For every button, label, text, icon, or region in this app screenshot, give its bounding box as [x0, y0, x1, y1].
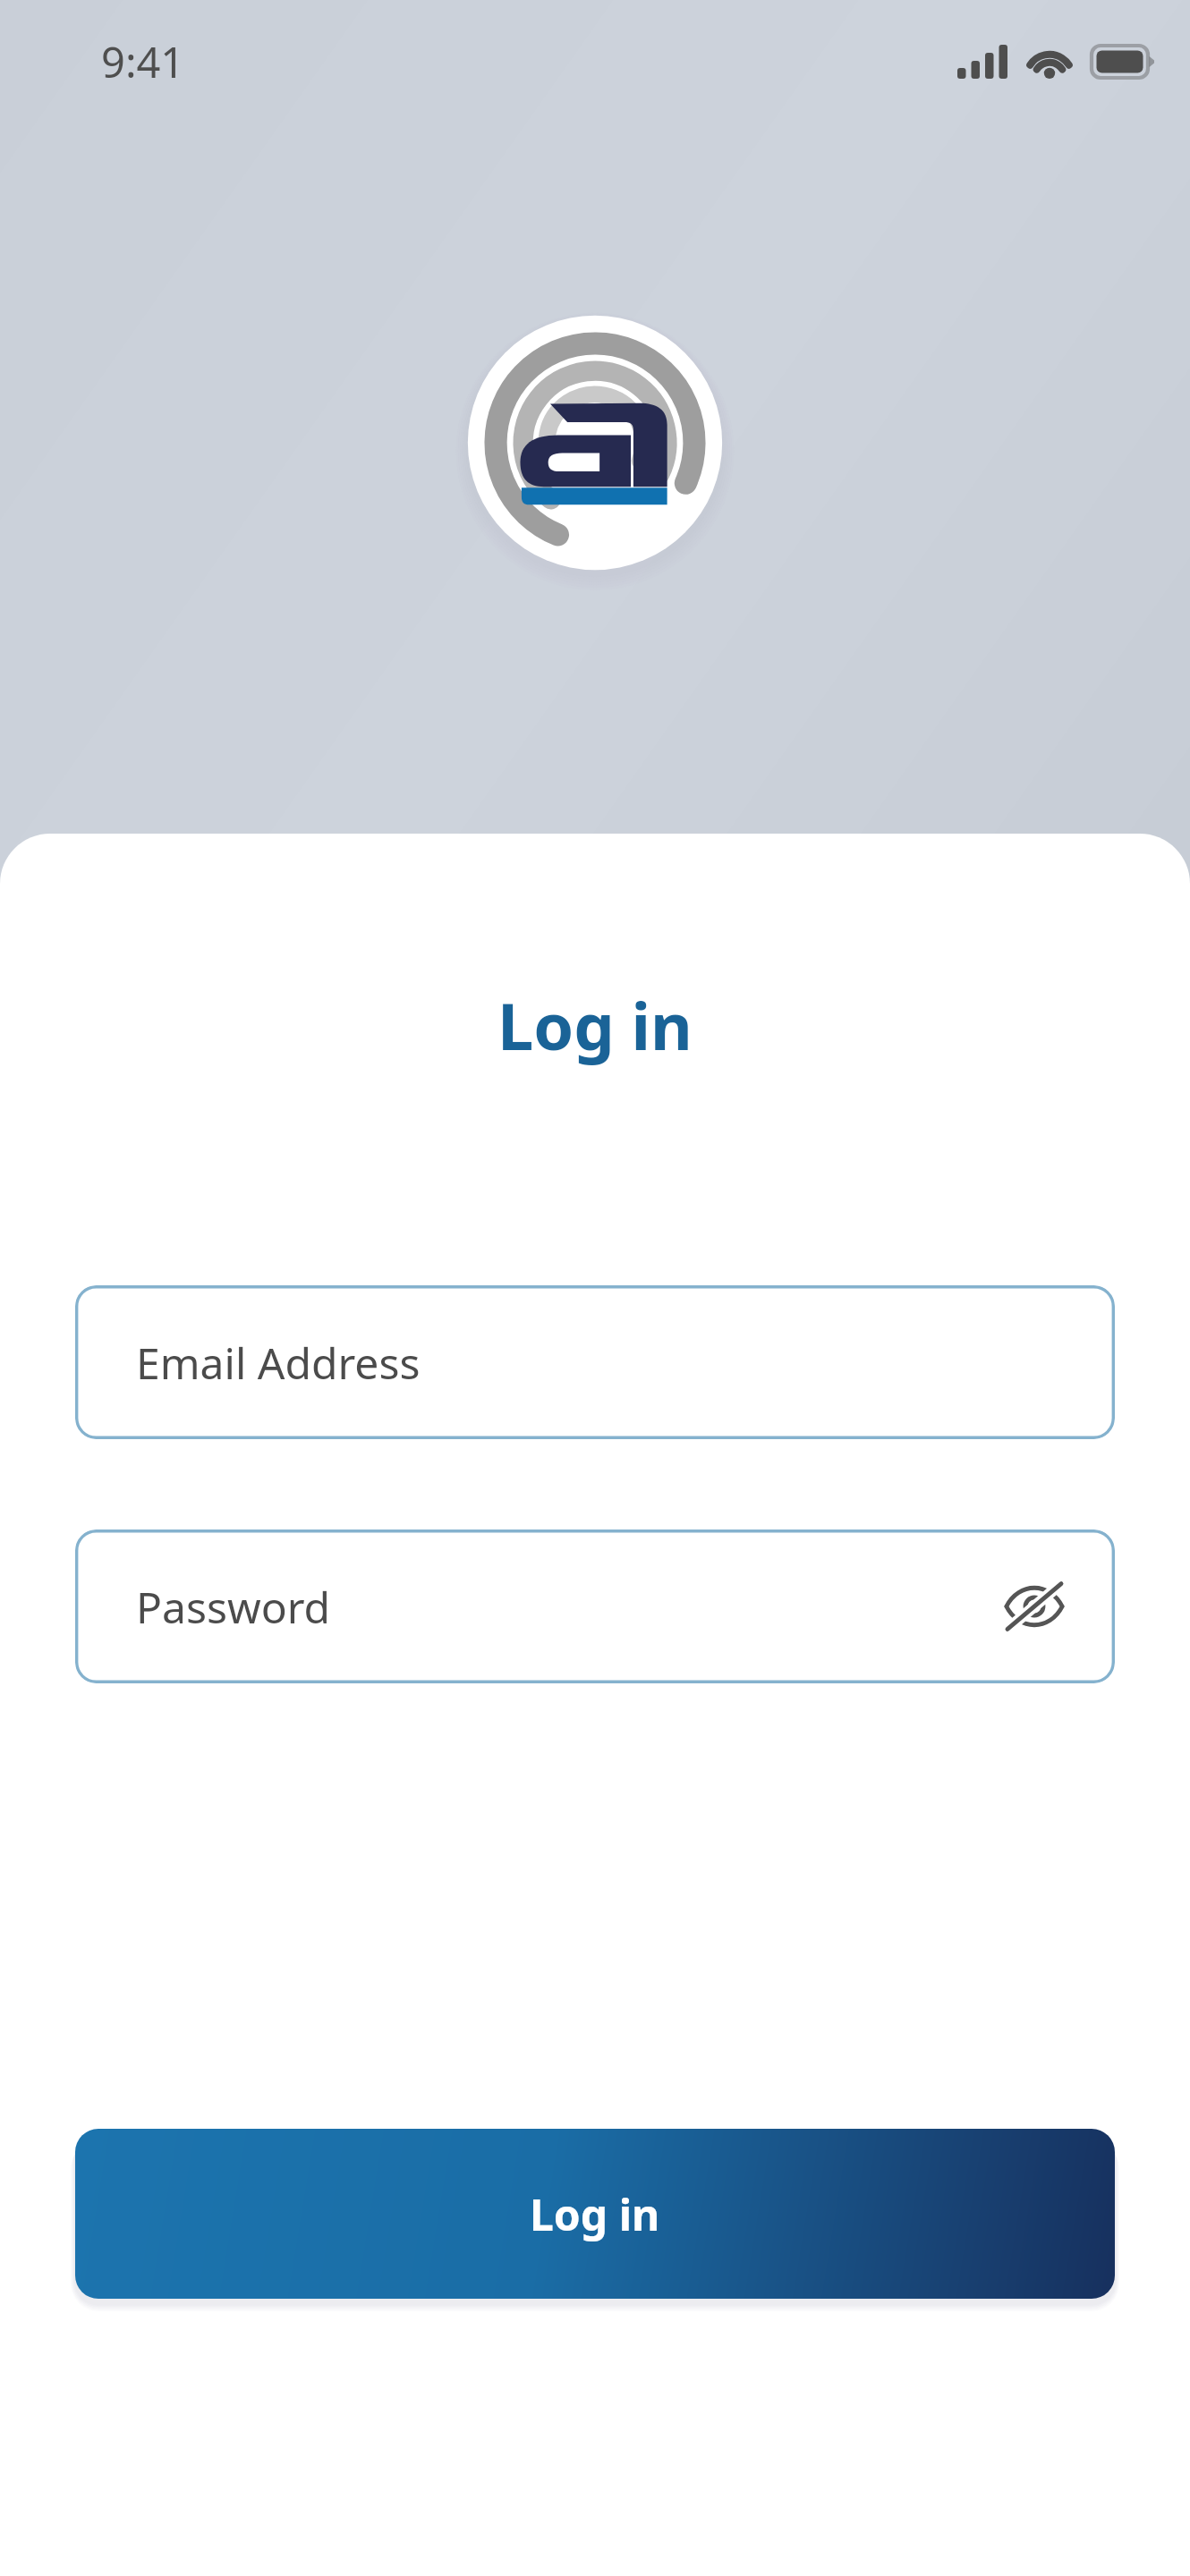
button[interactable]: Password [75, 1529, 1115, 1683]
staticText: Password [136, 1578, 331, 1636]
staticText: Log in [530, 2185, 660, 2243]
staticText: Email Address [136, 1334, 421, 1392]
staticText: Log in [0, 981, 1190, 1069]
button[interactable]: Log in [75, 2129, 1115, 2299]
staticText: 9:41 [101, 33, 185, 90]
button[interactable]: Show password [997, 1569, 1072, 1644]
button[interactable]: Email Address [75, 1285, 1115, 1439]
